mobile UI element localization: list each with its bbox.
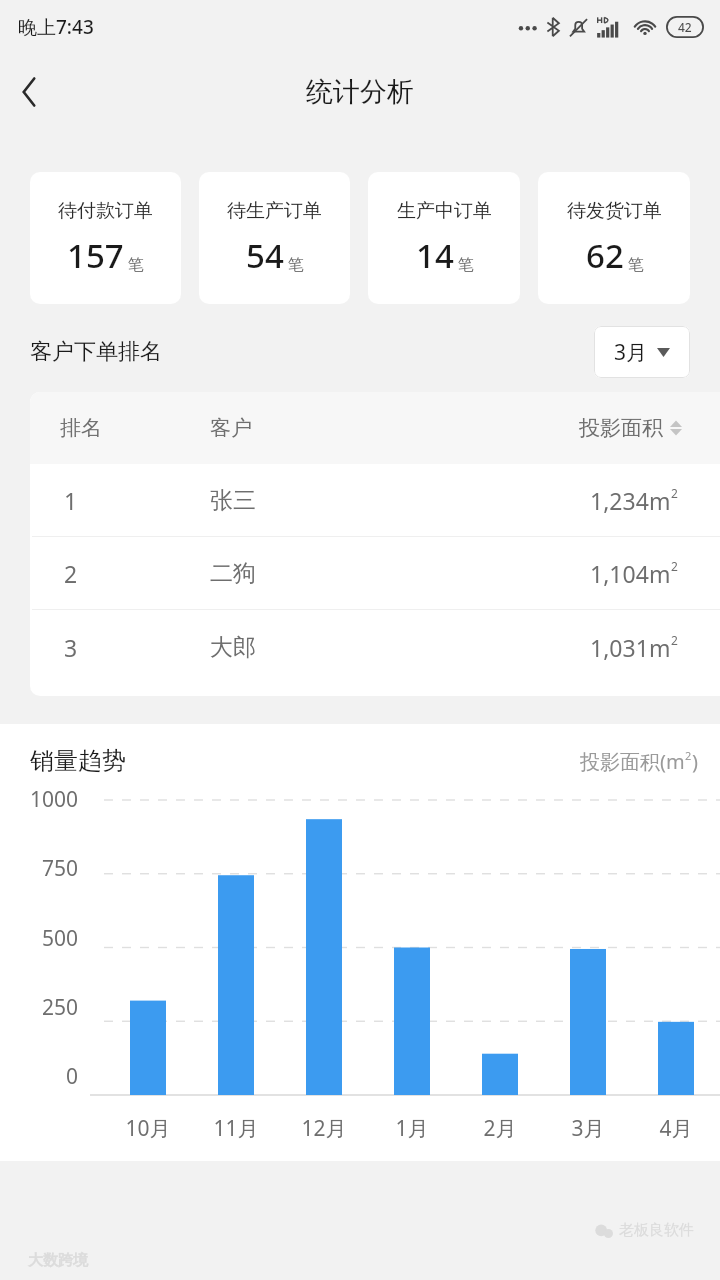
- staticText: 12月: [280, 1114, 368, 1143]
- staticText: 1000: [0, 785, 78, 814]
- staticText: 1月: [368, 1114, 456, 1143]
- staticText: 2: [671, 558, 678, 574]
- staticText: 157: [67, 233, 124, 278]
- staticText: 1,234: [590, 485, 649, 516]
- staticText: 投影面积(m: [580, 748, 685, 775]
- staticText: 待付款订单: [58, 199, 153, 223]
- staticText: 1,031: [590, 632, 649, 663]
- button[interactable]: 排名: [30, 392, 720, 464]
- staticText: 销量趋势: [30, 746, 126, 776]
- staticText: m: [649, 558, 671, 589]
- staticText: 2: [685, 748, 692, 763]
- staticText: 排名: [60, 415, 210, 441]
- button[interactable]: 待发货订单: [538, 172, 690, 304]
- staticText: 54: [246, 233, 284, 278]
- staticText: 笔: [458, 255, 474, 275]
- staticText: 1,104: [590, 558, 649, 589]
- staticText: 11月: [192, 1114, 280, 1143]
- staticText: 待发货订单: [567, 199, 662, 223]
- button[interactable]: Back: [0, 63, 58, 121]
- staticText: ): [692, 748, 698, 775]
- staticText: 250: [0, 993, 78, 1022]
- staticText: 大郎: [210, 633, 590, 662]
- button[interactable]: 3月: [594, 326, 690, 378]
- staticText: 生产中订单: [397, 199, 492, 223]
- staticText: 客户下单排名: [30, 338, 162, 366]
- button[interactable]: 生产中订单: [368, 172, 520, 304]
- button[interactable]: 2: [30, 537, 720, 609]
- staticText: 14: [416, 233, 454, 278]
- staticText: 2: [671, 485, 678, 501]
- staticText: 笔: [288, 255, 304, 275]
- staticText: 1: [64, 485, 210, 516]
- staticText: 晚上7:43: [18, 14, 94, 40]
- staticText: 统计分析: [306, 75, 414, 109]
- button[interactable]: 1: [30, 464, 720, 536]
- staticText: m: [649, 485, 671, 516]
- staticText: 大数跨境: [28, 1251, 88, 1270]
- button[interactable]: 待生产订单: [199, 172, 350, 304]
- staticText: 3: [64, 632, 210, 663]
- staticText: 笔: [128, 255, 144, 275]
- staticText: 4月: [632, 1114, 720, 1143]
- staticText: 500: [0, 924, 78, 953]
- staticText: 笔: [628, 255, 644, 275]
- staticText: 3月: [544, 1114, 632, 1143]
- staticText: 老板良软件: [619, 1221, 694, 1240]
- staticText: 待生产订单: [227, 199, 322, 223]
- staticText: 10月: [104, 1114, 192, 1143]
- staticText: 3月: [614, 338, 648, 367]
- staticText: 750: [0, 854, 78, 883]
- staticText: 42: [678, 19, 692, 35]
- staticText: 客户: [210, 415, 579, 441]
- staticText: 2: [64, 558, 210, 589]
- staticText: m: [649, 632, 671, 663]
- staticText: 62: [586, 233, 624, 278]
- staticText: 2月: [456, 1114, 544, 1143]
- staticText: 0: [0, 1062, 78, 1091]
- button[interactable]: 待付款订单: [30, 172, 181, 304]
- staticText: 张三: [210, 486, 590, 515]
- staticText: 投影面积: [579, 415, 663, 441]
- staticText: 2: [671, 632, 678, 648]
- staticText: 二狗: [210, 559, 590, 588]
- button[interactable]: 3: [30, 610, 720, 684]
